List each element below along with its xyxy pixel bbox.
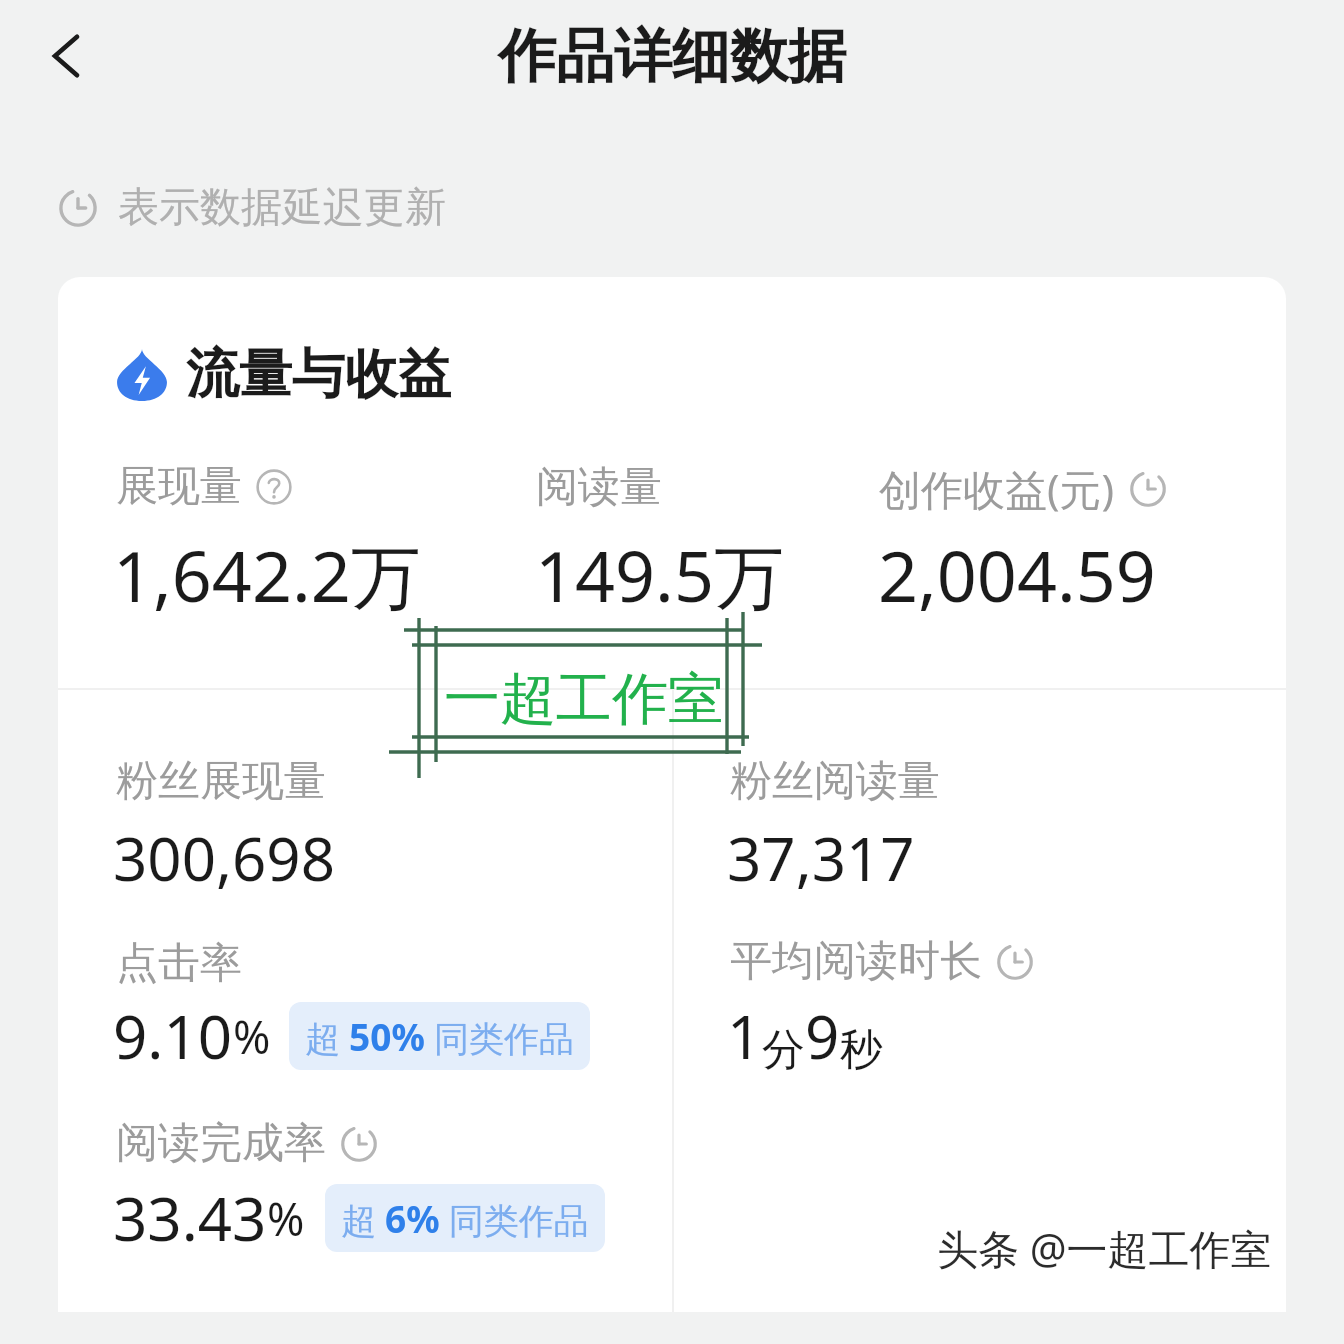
- staticText: 粉丝阅读量: [730, 755, 940, 808]
- button[interactable]: Back: [26, 16, 106, 96]
- staticText: 点击率: [116, 937, 242, 990]
- staticText: 33.43: [113, 1177, 267, 1259]
- staticText: %: [267, 1188, 305, 1249]
- staticText: 149.5万: [535, 527, 784, 623]
- staticText: 1,642.2万: [113, 527, 421, 623]
- staticText: 2,004.59: [878, 527, 1156, 622]
- staticText: 头条 @一超工作室: [937, 1220, 1272, 1276]
- staticText: 流量与收益: [186, 341, 451, 408]
- staticText: 粉丝展现量: [116, 755, 326, 808]
- staticText: 超 50% 同类作品: [305, 1011, 574, 1061]
- staticText: 分: [762, 1023, 805, 1077]
- staticText: 阅读完成率: [116, 1117, 326, 1170]
- button[interactable]: 超 50% 同类作品: [289, 1002, 590, 1070]
- staticText: %: [233, 1006, 271, 1067]
- staticText: 37,317: [727, 817, 915, 899]
- staticText: 1: [727, 995, 762, 1077]
- button[interactable]: Help: [256, 469, 292, 505]
- staticText: 作品详细数据: [498, 20, 846, 93]
- staticText: 一超工作室: [444, 664, 724, 735]
- staticText: 表示数据延迟更新: [118, 182, 446, 234]
- staticText: 超 6% 同类作品: [341, 1193, 589, 1243]
- staticText: 9.10: [113, 995, 233, 1077]
- staticText: 平均阅读时长: [730, 935, 982, 988]
- staticText: 秒: [840, 1023, 883, 1077]
- staticText: 展现量: [116, 460, 242, 513]
- button[interactable]: 超 6% 同类作品: [325, 1184, 605, 1252]
- staticText: 300,698: [113, 817, 335, 899]
- staticText: 阅读量: [536, 461, 662, 514]
- staticText: 9: [805, 995, 840, 1077]
- staticText: 创作收益(元): [879, 460, 1115, 517]
